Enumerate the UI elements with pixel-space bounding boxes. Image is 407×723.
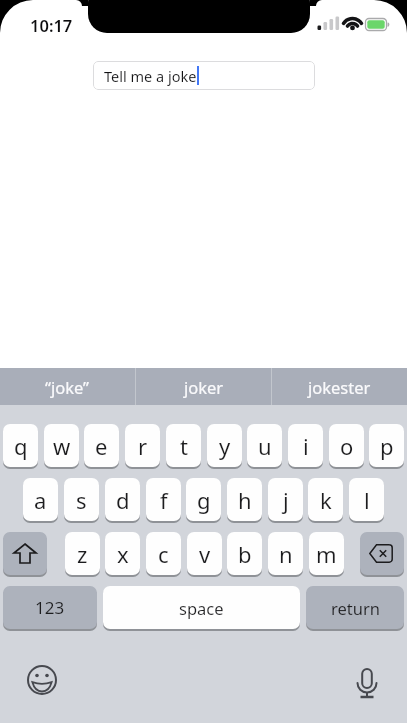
staticText: f [160,485,168,515]
staticText: joker [184,376,224,398]
staticText: k [320,485,332,515]
staticText: x [117,539,129,569]
button[interactable]: m [309,532,344,575]
staticText: h [238,485,252,515]
staticText: space [179,597,224,619]
button[interactable]: p [369,424,404,467]
staticText: i [303,431,309,461]
staticText: l [364,485,370,515]
staticText: v [199,539,211,569]
button[interactable]: w [44,424,79,467]
staticText: 10:17 [30,14,73,36]
staticText: 123 [35,596,65,619]
button[interactable] [3,532,47,575]
staticText: n [279,539,293,569]
button[interactable]: v [187,532,222,575]
staticText: y [219,431,231,461]
button[interactable]: q [3,424,38,467]
button[interactable]: u [247,424,282,467]
staticText: w [53,431,71,461]
button[interactable]: t [166,424,201,467]
staticText: c [158,539,169,569]
button[interactable]: s [64,478,99,521]
button[interactable]: h [227,478,262,521]
button[interactable]: f [146,478,181,521]
staticText: q [14,431,28,461]
button[interactable]: o [329,424,364,467]
staticText: j [283,485,289,515]
staticText: Tell me a joke [104,66,197,86]
staticText: r [138,431,148,461]
button[interactable]: r [125,424,160,467]
button[interactable]: a [23,478,58,521]
button[interactable]: j [268,478,303,521]
staticText: d [116,485,130,515]
button[interactable]: e [84,424,119,467]
button[interactable] [26,664,58,696]
button[interactable]: jokester [272,368,407,405]
button[interactable]: “joke” [0,368,135,405]
button[interactable]: joker [136,368,271,405]
staticText: s [76,485,87,515]
button[interactable] [352,662,382,700]
button[interactable]: k [308,478,343,521]
button[interactable]: Tell me a joke [93,61,315,90]
button[interactable]: i [288,424,323,467]
button[interactable]: return [306,586,404,629]
staticText: u [258,431,272,461]
staticText: m [316,539,337,569]
staticText: p [380,431,394,461]
button[interactable]: l [349,478,384,521]
staticText: a [34,485,47,515]
button[interactable]: space [103,586,300,629]
button[interactable]: g [186,478,221,521]
staticText: g [197,485,211,515]
staticText: “joke” [45,376,90,398]
button[interactable]: b [227,532,262,575]
staticText: z [77,539,88,569]
button[interactable]: z [65,532,100,575]
button[interactable]: n [268,532,303,575]
button[interactable]: c [146,532,181,575]
staticText: b [238,539,252,569]
staticText: jokester [308,376,371,398]
staticText: t [180,431,188,461]
button[interactable]: y [207,424,242,467]
button[interactable] [360,532,404,575]
staticText: o [340,431,354,461]
staticText: return [331,597,380,619]
button[interactable]: d [105,478,140,521]
button[interactable]: x [105,532,140,575]
staticText: e [95,431,108,461]
button[interactable]: 123 [3,586,97,629]
